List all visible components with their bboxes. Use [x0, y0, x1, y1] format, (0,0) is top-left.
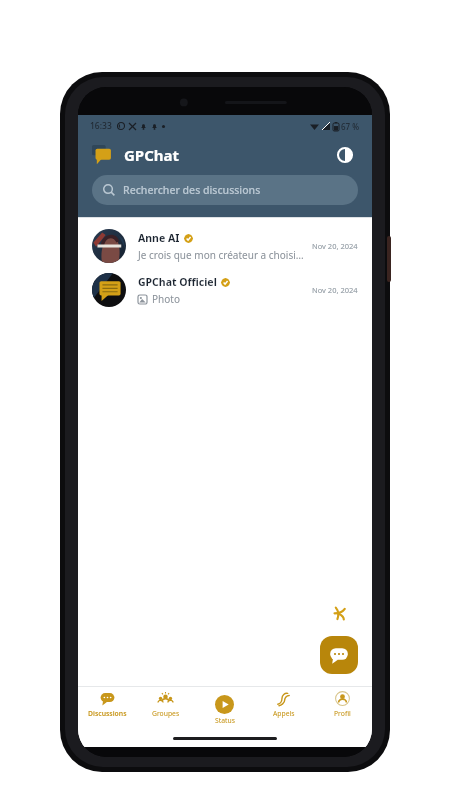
button[interactable]: Discussions	[78, 687, 136, 729]
staticText: Nov 20, 2024	[312, 241, 358, 251]
staticText: Groupes	[152, 709, 180, 718]
button[interactable]: Status	[195, 687, 254, 729]
staticText: Status	[215, 716, 235, 725]
staticText: 16:33	[90, 120, 112, 132]
button[interactable]: Groupes	[136, 687, 195, 729]
staticText: Nov 20, 2024	[312, 285, 358, 295]
button[interactable]: GPChat Officiel	[78, 268, 372, 312]
staticText: Photo	[152, 292, 180, 306]
button[interactable]: Assistant IA	[324, 598, 354, 628]
staticText: Discussions	[88, 709, 127, 718]
button[interactable]: Basculer le thème	[332, 142, 358, 168]
staticText: GPChat Officiel	[138, 275, 217, 289]
staticText: Je crois que mon créateur a choisi le pr…	[138, 248, 306, 262]
button[interactable]: Anne AI	[78, 224, 372, 268]
button[interactable]: Profil	[313, 687, 372, 729]
button[interactable]: Rechercher des discussions	[92, 175, 358, 205]
button[interactable]: Appels	[254, 687, 313, 729]
staticText: 67 %	[341, 121, 360, 132]
staticText: Profil	[334, 709, 351, 718]
staticText: Appels	[273, 709, 295, 718]
staticText: Rechercher des discussions	[123, 183, 261, 197]
staticText: Anne AI	[138, 231, 180, 245]
button[interactable]: Nouvelle discussion	[320, 636, 358, 674]
staticText: GPChat	[124, 145, 180, 165]
